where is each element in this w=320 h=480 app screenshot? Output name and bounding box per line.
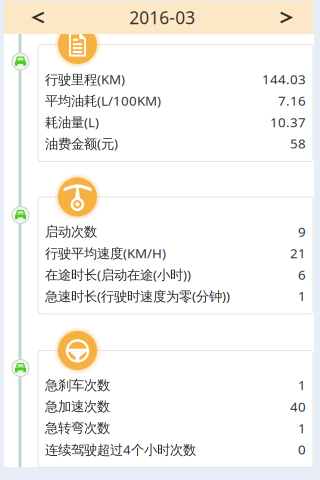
staticText: 平均油耗(L/100KM) [45,92,161,109]
staticText: 耗油量(L) [45,113,99,131]
staticText: 2016-03 [129,6,195,29]
staticText: 144.03 [262,70,306,88]
staticText: 10.37 [270,113,306,131]
staticText: 急加速次数 [45,398,110,415]
staticText: 21 [290,244,306,262]
staticText: 1 [298,419,306,437]
staticText: 在途时长(启动在途(小时)) [45,266,191,283]
staticText: 1 [298,376,306,394]
staticText: 58 [290,134,306,152]
staticText: 行驶平均速度(KM/H) [45,244,166,262]
staticText: 1 [298,287,306,305]
staticText: 行驶里程(KM) [45,70,125,88]
staticText: 9 [298,223,306,240]
staticText: 连续驾驶超过4个小时次数 [45,440,196,458]
button[interactable]: Previous month [4,1,55,34]
staticText: 7.16 [278,92,306,109]
staticText: 急转弯次数 [45,420,110,436]
staticText: 启动次数 [45,223,97,240]
staticText: 6 [298,266,306,283]
staticText: 40 [290,398,306,415]
staticText: 急刹车次数 [45,377,110,393]
staticText: 0 [298,440,306,458]
staticText: 急速时长(行驶时速度为零(分钟)) [45,287,230,305]
staticText: 油费金额(元) [45,134,118,152]
button[interactable]: Next month [269,1,313,34]
